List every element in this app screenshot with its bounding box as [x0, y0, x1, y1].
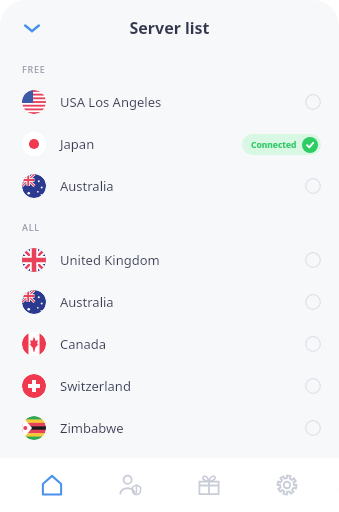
button[interactable]: United Kingdom [0, 239, 339, 281]
staticText: Australia [60, 177, 305, 195]
staticText: Connected [251, 139, 297, 151]
button[interactable]: Collapse [14, 10, 50, 46]
button[interactable]: Japan [0, 123, 339, 165]
staticText: Canada [60, 335, 305, 353]
button[interactable]: Australia [0, 281, 339, 323]
button[interactable]: Switzerland [0, 365, 339, 407]
staticText: FREE [22, 63, 46, 75]
staticText: ALL [22, 221, 40, 233]
button[interactable]: Settings [261, 459, 313, 511]
staticText: Zimbabwe [60, 419, 305, 437]
staticText: United Kingdom [60, 251, 305, 269]
staticText: Server list [129, 17, 210, 39]
button[interactable]: Canada [0, 323, 339, 365]
button[interactable]: Zimbabwe [0, 407, 339, 449]
button[interactable]: Account [104, 459, 156, 511]
staticText: Switzerland [60, 377, 305, 395]
button[interactable]: Rewards [183, 459, 235, 511]
button[interactable]: USA Los Angeles [0, 81, 339, 123]
button[interactable]: Australia [0, 165, 339, 207]
staticText: Australia [60, 293, 305, 311]
staticText: Japan [60, 135, 242, 153]
staticText: USA Los Angeles [60, 93, 305, 111]
button[interactable]: Home [26, 459, 78, 511]
